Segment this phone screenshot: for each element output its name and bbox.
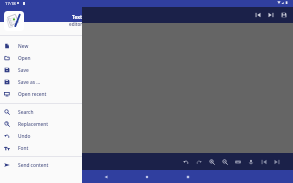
button[interactable]: Recents xyxy=(167,170,208,183)
staticText: Open recent xyxy=(18,91,47,98)
button[interactable]: Save xyxy=(0,64,82,76)
staticText: 17:18 xyxy=(5,1,16,7)
button[interactable]: Undo xyxy=(0,130,82,142)
button[interactable]: Save xyxy=(277,7,290,23)
staticText: Search xyxy=(18,109,34,116)
button[interactable]: Home xyxy=(126,170,167,183)
button[interactable]: Save as … xyxy=(0,76,82,88)
button[interactable]: Skip to start xyxy=(251,7,264,23)
button[interactable]: Skip to end xyxy=(264,7,277,23)
button[interactable]: Open xyxy=(0,52,82,64)
staticText: Replacement xyxy=(18,121,49,128)
button[interactable]: Redo xyxy=(192,153,205,170)
button[interactable]: Replacement xyxy=(0,118,82,130)
button[interactable]: New xyxy=(0,40,82,52)
button[interactable]: Voice input xyxy=(244,153,257,170)
staticText: Font xyxy=(18,145,29,152)
button[interactable]: Zoom in xyxy=(205,153,218,170)
button[interactable]: Keyboard xyxy=(231,153,244,170)
staticText: New xyxy=(18,43,29,50)
button[interactable]: Open recent xyxy=(0,88,82,100)
staticText: editor xyxy=(69,21,83,27)
button[interactable]: Font xyxy=(0,142,82,154)
button[interactable]: Next xyxy=(270,153,283,170)
staticText: Open xyxy=(18,55,31,62)
button[interactable]: Zoom out xyxy=(218,153,231,170)
staticText: Send content xyxy=(18,162,49,169)
staticText: Text xyxy=(72,14,83,21)
staticText: Save as … xyxy=(18,79,41,86)
button[interactable]: Previous xyxy=(257,153,270,170)
button[interactable]: Send content xyxy=(0,159,82,171)
staticText: Undo xyxy=(18,133,31,140)
button[interactable]: Undo xyxy=(179,153,192,170)
button[interactable]: Search xyxy=(0,106,82,118)
staticText: Save xyxy=(18,67,29,74)
button[interactable]: Back xyxy=(85,170,126,183)
